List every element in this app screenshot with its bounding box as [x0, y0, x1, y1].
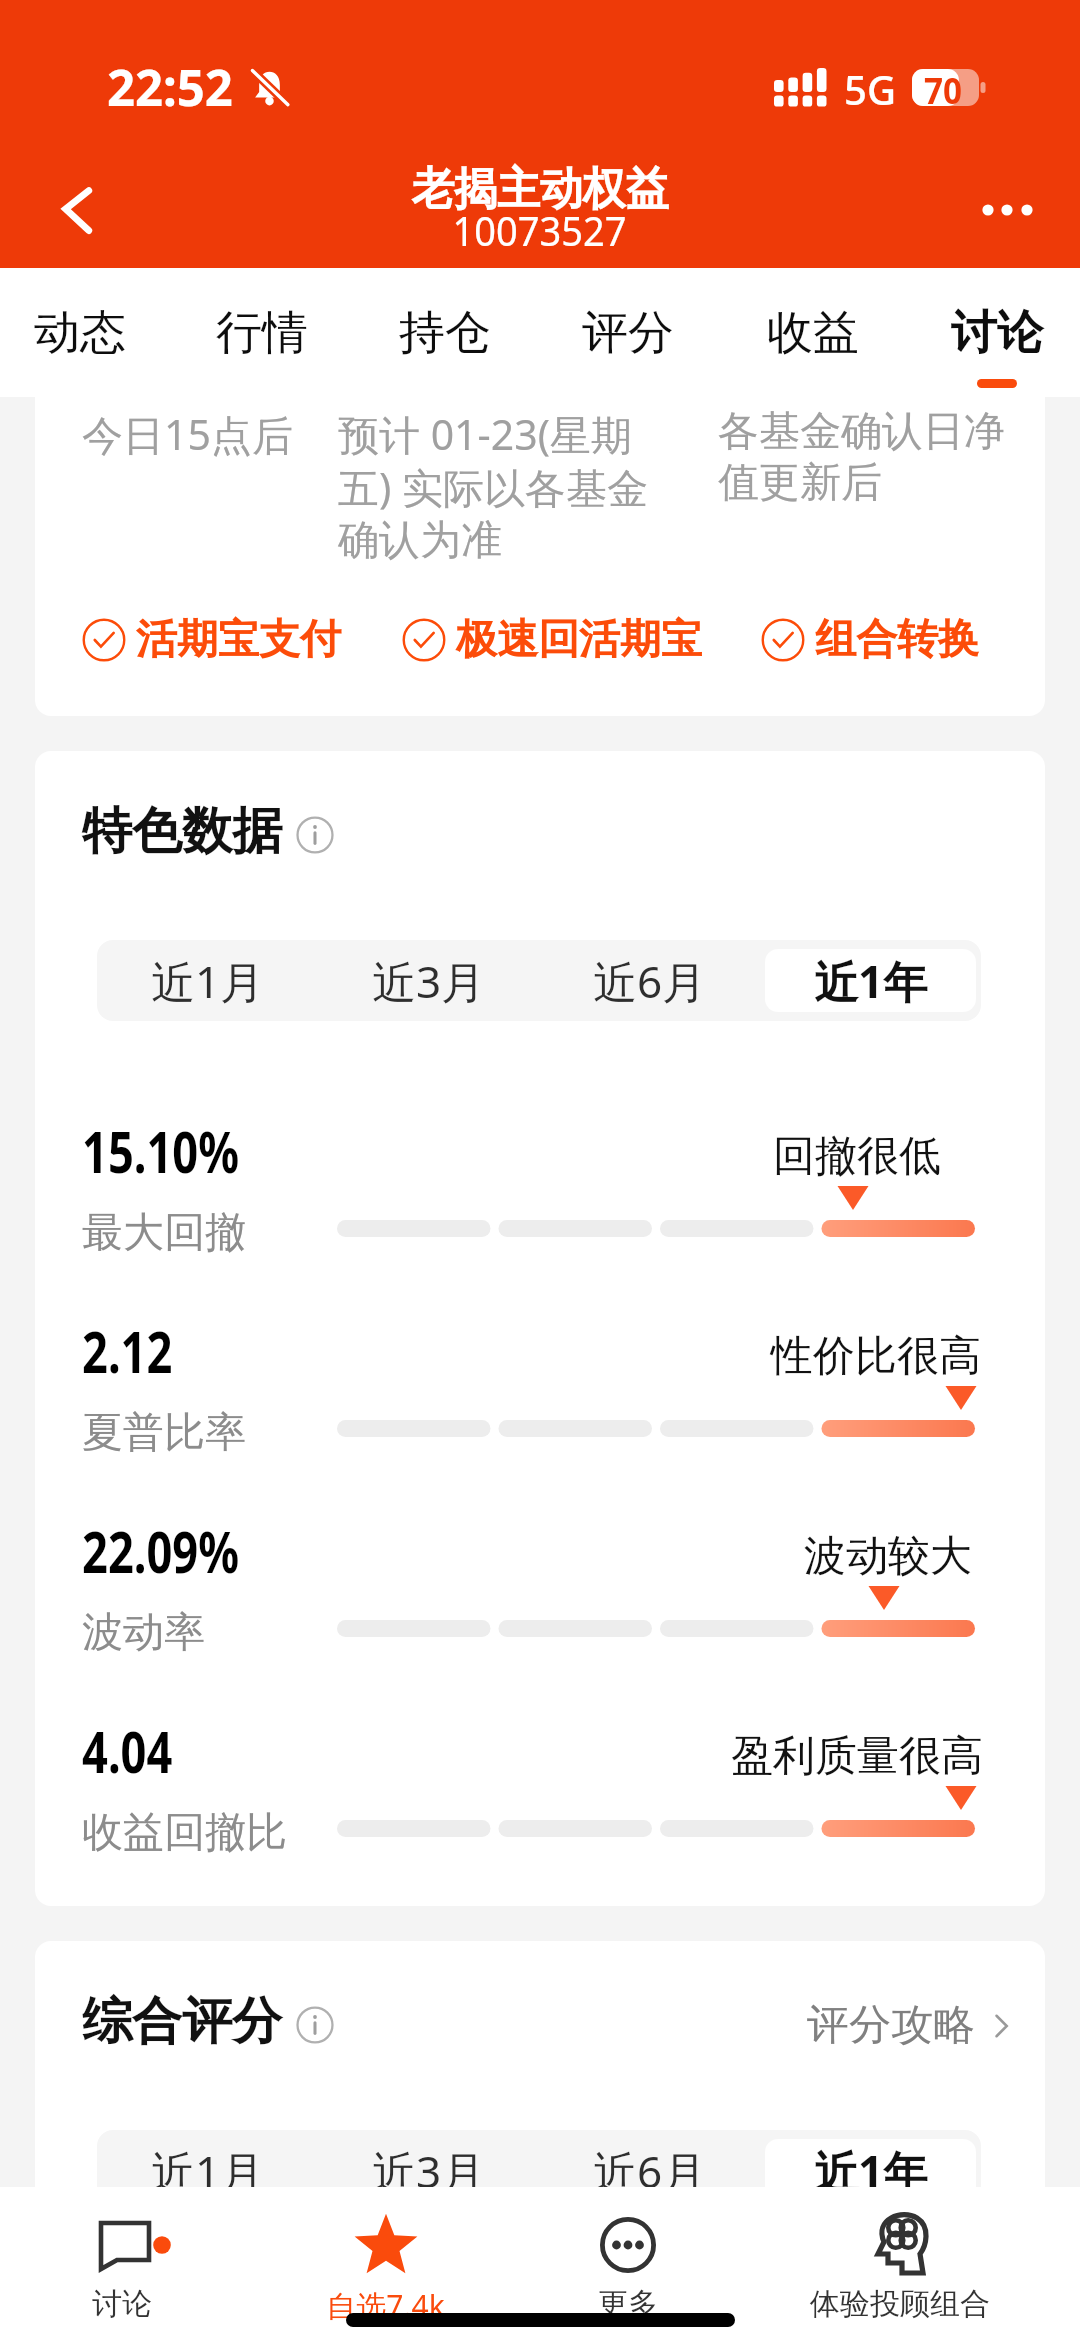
button[interactable]: Info	[296, 2006, 334, 2044]
staticText: 10073527	[453, 203, 627, 257]
staticText: 活期宝支付	[136, 614, 341, 666]
button[interactable]: More options	[948, 170, 1028, 250]
staticText: 70	[924, 67, 963, 115]
staticText: 讨论	[951, 304, 1043, 362]
staticText: 波动率	[82, 1607, 205, 1659]
button[interactable]: 活期宝支付	[82, 609, 341, 671]
staticText: 行情	[216, 304, 308, 362]
staticText: 近3月	[372, 2141, 486, 2187]
staticText: 动态	[34, 304, 126, 362]
other: More	[597, 2211, 659, 2273]
staticText: 更多	[598, 2285, 658, 2323]
staticText: 今日15点后	[82, 406, 342, 462]
button[interactable]: 近1年	[765, 949, 976, 1012]
staticText: 盈利质量很高	[731, 1730, 983, 1783]
button[interactable]: 收益	[725, 268, 901, 397]
staticText: 特色数据	[82, 800, 282, 863]
staticText: 收益	[767, 304, 859, 362]
staticText: 讨论	[92, 2285, 152, 2323]
staticText: 综合评分	[82, 1990, 282, 2053]
staticText: 预计 01-23(星期五) 实际以各基金确认为准	[338, 406, 658, 566]
staticText: 评分攻略	[807, 1999, 975, 2052]
button[interactable]: 近1月	[102, 2139, 313, 2187]
staticText: 近6月	[593, 2141, 707, 2187]
button[interactable]: Advisor portfolio	[770, 2187, 1030, 2348]
staticText: 评分	[582, 304, 674, 362]
staticText: 近1月	[151, 2141, 265, 2187]
button[interactable]: 评分	[540, 268, 716, 397]
staticText: 最大回撤	[82, 1207, 246, 1259]
button[interactable]: 近6月	[544, 2139, 755, 2187]
staticText: 自选7.4k	[326, 2285, 445, 2326]
button[interactable]: Watchlist	[255, 2187, 515, 2348]
other: Watchlist	[353, 2211, 419, 2273]
button[interactable]: 近3月	[323, 949, 534, 1012]
staticText: 持仓	[399, 304, 491, 362]
button[interactable]: Back	[36, 169, 116, 249]
button[interactable]: Discussion	[0, 2187, 252, 2348]
staticText: 各基金确认日净值更新后	[718, 406, 1010, 508]
staticText: 性价比很高	[771, 1330, 981, 1383]
other: Discussion	[85, 2211, 167, 2273]
button[interactable]: 近1月	[102, 949, 313, 1012]
staticText: 回撤很低	[773, 1130, 941, 1183]
staticText: 体验投顾组合	[810, 2285, 990, 2323]
staticText: 5G	[844, 62, 896, 116]
staticText: 波动较大	[804, 1530, 972, 1583]
button[interactable]: 评分攻略	[807, 1995, 1017, 2048]
staticText: 22.09%	[82, 1511, 240, 1581]
button[interactable]: 讨论	[909, 268, 1080, 397]
button[interactable]: 近6月	[544, 949, 755, 1012]
staticText: 近1年	[814, 951, 928, 1011]
button[interactable]: 极速回活期宝	[402, 609, 702, 671]
staticText: 近1年	[814, 2141, 928, 2187]
button[interactable]: 近3月	[323, 2139, 534, 2187]
staticText: 近6月	[593, 951, 707, 1011]
staticText: 4.04	[82, 1711, 172, 1781]
button[interactable]: 行情	[174, 268, 350, 397]
staticText: 极速回活期宝	[456, 614, 702, 666]
staticText: 2.12	[82, 1311, 172, 1381]
button[interactable]: 近1年	[765, 2139, 976, 2187]
button[interactable]: 持仓	[357, 268, 533, 397]
staticText: 收益回撤比	[82, 1807, 287, 1859]
staticText: 22:52	[107, 53, 233, 121]
staticText: 夏普比率	[82, 1407, 246, 1459]
staticText: 近3月	[372, 951, 486, 1011]
button[interactable]: Info	[296, 816, 334, 854]
other: Advisor portfolio	[872, 2211, 936, 2273]
button[interactable]: 组合转换	[761, 609, 979, 671]
staticText: 老揭主动权益	[412, 161, 668, 218]
button[interactable]: More	[498, 2187, 758, 2348]
staticText: 15.10%	[82, 1111, 240, 1181]
staticText: 组合转换	[815, 614, 979, 666]
button[interactable]: 动态	[0, 268, 168, 397]
staticText: 近1月	[151, 951, 265, 1011]
